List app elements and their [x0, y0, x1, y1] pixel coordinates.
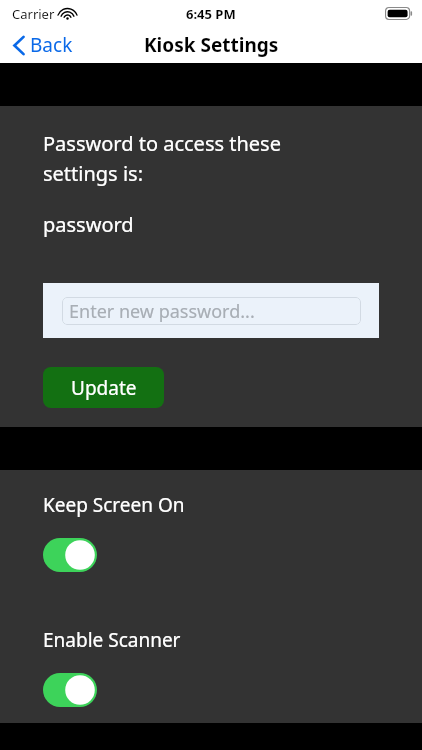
staticText: Kiosk Settings — [144, 32, 279, 58]
button[interactable]: Back — [0, 28, 83, 62]
staticText: 6:45 PM — [186, 5, 236, 23]
button[interactable]: Keep Screen On — [0, 470, 422, 578]
staticText: Carrier — [12, 5, 55, 23]
button[interactable]: Enter new password... — [43, 283, 379, 338]
button[interactable]: Update — [43, 367, 164, 408]
staticText: Enable Scanner — [43, 627, 181, 653]
staticText: Keep Screen On — [43, 492, 185, 518]
other: Keep Screen On — [43, 538, 97, 572]
other: Enable Scanner — [43, 673, 97, 707]
staticText: Password to access these settings is: — [43, 130, 281, 187]
staticText: Back — [30, 32, 73, 58]
staticText: password — [43, 211, 134, 238]
button[interactable]: Enable Scanner — [0, 605, 422, 713]
staticText: Update — [71, 375, 137, 401]
staticText: Enter new password... — [69, 299, 255, 324]
